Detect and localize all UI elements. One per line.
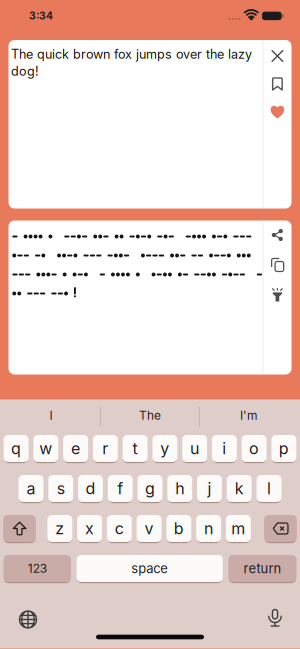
staticText: e — [71, 439, 80, 458]
staticText: s — [57, 479, 65, 498]
staticText: a — [26, 479, 35, 498]
button[interactable]: f — [108, 474, 133, 502]
staticText: b — [174, 519, 184, 538]
button[interactable]: I'm — [200, 399, 298, 434]
staticText: u — [190, 439, 199, 458]
button[interactable]: x — [77, 514, 102, 542]
staticText: z — [55, 519, 64, 538]
button[interactable]: Copy — [272, 258, 283, 271]
button[interactable]: u — [182, 434, 207, 462]
button[interactable]: Clear text — [270, 50, 284, 62]
button[interactable]: I — [2, 399, 100, 434]
button[interactable]: l — [256, 474, 281, 502]
button[interactable]: k — [227, 474, 252, 502]
staticText: return — [243, 561, 281, 576]
staticText: i — [222, 439, 226, 458]
button[interactable]: g — [137, 474, 162, 502]
button[interactable]: 123 — [3, 554, 71, 582]
staticText: 123 — [28, 561, 47, 576]
button[interactable]: Shift — [3, 514, 36, 542]
button[interactable]: r — [93, 434, 118, 462]
staticText: k — [235, 479, 244, 498]
staticText: l — [267, 479, 271, 498]
button[interactable]: Favorite — [271, 106, 284, 118]
button[interactable]: q — [4, 434, 29, 462]
button[interactable]: c — [107, 514, 132, 542]
button[interactable]: h — [167, 474, 192, 502]
staticText: c — [115, 519, 124, 538]
staticText: t — [133, 439, 138, 458]
staticText: r — [102, 439, 108, 458]
staticText: I — [49, 408, 52, 423]
button[interactable]: Delete — [264, 514, 297, 542]
staticText: o — [249, 439, 259, 458]
staticText: I'm — [240, 408, 258, 423]
staticText: w — [39, 439, 52, 458]
button[interactable]: i — [212, 434, 237, 462]
staticText: m — [231, 519, 245, 538]
button[interactable]: Share — [271, 229, 283, 241]
staticText: h — [175, 479, 184, 498]
staticText: p — [279, 439, 289, 458]
staticText: space — [131, 561, 168, 576]
staticText: The quick brown fox jumps over the lazy … — [11, 46, 252, 79]
staticText: 3:34 — [29, 9, 53, 22]
button[interactable]: Dictate — [261, 604, 289, 632]
button[interactable]: Flash — [271, 288, 283, 301]
staticText: d — [85, 479, 95, 498]
button[interactable]: Bookmark — [270, 77, 284, 90]
staticText: j — [207, 479, 211, 498]
button[interactable]: t — [123, 434, 148, 462]
button[interactable]: p — [271, 434, 296, 462]
staticText: v — [145, 519, 154, 538]
staticText: g — [145, 479, 155, 498]
button[interactable]: z — [47, 514, 72, 542]
staticText: f — [117, 479, 123, 498]
button[interactable]: b — [166, 514, 191, 542]
button[interactable]: s — [48, 474, 73, 502]
button[interactable]: The — [101, 399, 199, 434]
button[interactable]: e — [63, 434, 88, 462]
button[interactable]: j — [197, 474, 222, 502]
button[interactable]: y — [152, 434, 177, 462]
staticText: The — [139, 408, 161, 423]
button[interactable]: space — [77, 554, 223, 582]
button[interactable]: n — [196, 514, 221, 542]
button[interactable]: Next keyboard — [14, 605, 42, 633]
staticText: n — [204, 519, 213, 538]
button[interactable]: a — [18, 474, 43, 502]
button[interactable]: m — [226, 514, 251, 542]
staticText: x — [85, 519, 94, 538]
button[interactable]: v — [137, 514, 162, 542]
button[interactable]: d — [78, 474, 103, 502]
button[interactable]: return — [228, 554, 296, 582]
staticText: q — [11, 439, 21, 458]
button[interactable]: o — [242, 434, 267, 462]
staticText: y — [160, 439, 169, 458]
button[interactable]: w — [33, 434, 58, 462]
